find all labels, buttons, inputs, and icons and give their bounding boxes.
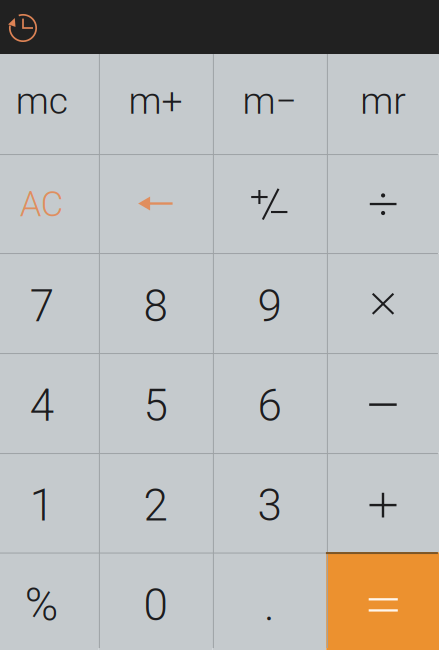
button[interactable]: 2 bbox=[99, 453, 212, 552]
button[interactable]: mr bbox=[326, 54, 439, 154]
button[interactable]: 6 bbox=[212, 353, 326, 453]
button[interactable]: Multiply bbox=[326, 253, 439, 353]
button[interactable]: Plus minus bbox=[212, 154, 326, 253]
button[interactable]: % bbox=[0, 552, 99, 650]
button[interactable]: Backspace bbox=[99, 154, 212, 253]
staticText: 3 bbox=[257, 480, 281, 531]
button[interactable]: AC bbox=[0, 154, 99, 253]
button[interactable]: m+ bbox=[99, 54, 212, 154]
button[interactable]: Plus bbox=[326, 453, 439, 552]
staticText: AC bbox=[20, 184, 64, 225]
staticText: . bbox=[264, 579, 275, 631]
button[interactable]: 5 bbox=[99, 353, 212, 453]
button[interactable]: m− bbox=[212, 54, 326, 154]
staticText: 8 bbox=[144, 280, 168, 332]
button[interactable]: Equals bbox=[326, 552, 439, 650]
staticText: % bbox=[25, 579, 59, 632]
staticText: 0 bbox=[144, 579, 168, 631]
button[interactable]: 9 bbox=[212, 253, 326, 353]
staticText: mr bbox=[360, 79, 406, 123]
button[interactable]: Divide bbox=[326, 154, 439, 253]
staticText: m− bbox=[242, 79, 296, 123]
button[interactable]: 1 bbox=[0, 453, 99, 552]
button[interactable]: 3 bbox=[212, 453, 326, 552]
staticText: mc bbox=[16, 79, 68, 123]
button[interactable]: 0 bbox=[99, 552, 212, 650]
staticText: 7 bbox=[30, 280, 54, 332]
staticText: 6 bbox=[257, 380, 281, 432]
button[interactable]: 7 bbox=[0, 253, 99, 353]
button[interactable]: 4 bbox=[0, 353, 99, 453]
button[interactable]: Minus bbox=[326, 353, 439, 453]
staticText: 9 bbox=[257, 280, 281, 332]
button[interactable]: . bbox=[212, 552, 326, 650]
button[interactable]: 8 bbox=[99, 253, 212, 353]
button[interactable]: History bbox=[1, 6, 45, 50]
staticText: 5 bbox=[144, 380, 168, 432]
staticText: 4 bbox=[30, 380, 54, 432]
staticText: 2 bbox=[144, 480, 168, 531]
staticText: m+ bbox=[129, 79, 183, 123]
staticText: 1 bbox=[30, 480, 54, 531]
button[interactable]: mc bbox=[0, 54, 99, 154]
